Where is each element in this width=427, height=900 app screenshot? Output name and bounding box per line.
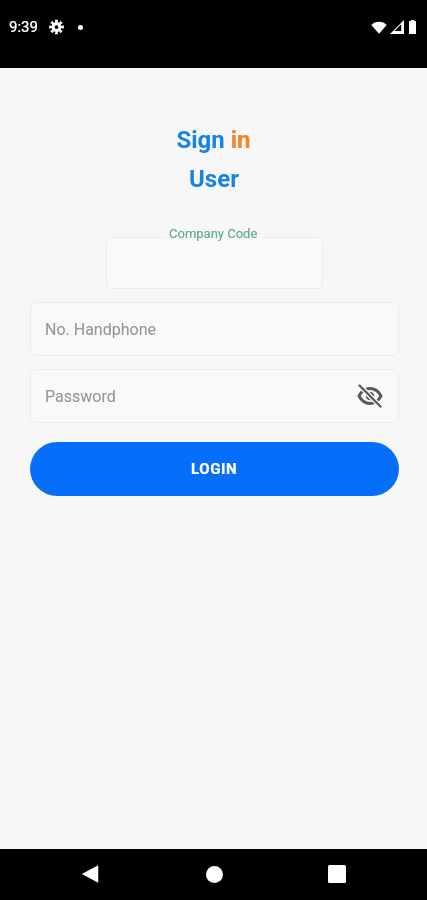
button[interactable]: No. Handphone (30, 302, 399, 356)
staticText: Password (45, 387, 116, 406)
staticText: User (189, 165, 239, 193)
staticText: 9:39 (9, 18, 38, 36)
staticText: LOGIN (191, 460, 238, 478)
button[interactable]: Recents (313, 850, 361, 898)
button[interactable]: Home (190, 850, 238, 898)
staticText: No. Handphone (45, 320, 156, 339)
button[interactable]: Back (66, 850, 114, 898)
button[interactable]: LOGIN (30, 442, 399, 496)
button[interactable]: Password (30, 369, 399, 423)
button[interactable] (106, 237, 323, 289)
staticText: Company Code (169, 226, 258, 241)
staticText: Sign in (176, 126, 251, 154)
button[interactable]: Show password (355, 381, 385, 411)
